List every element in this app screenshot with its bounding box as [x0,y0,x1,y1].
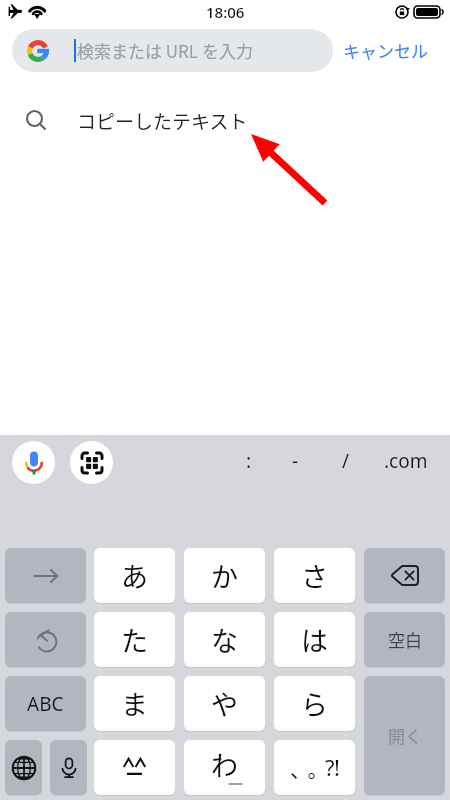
staticText: - [292,448,299,474]
button[interactable]: ABC [5,676,86,731]
staticText: : [246,448,252,474]
staticText: ま [121,684,148,723]
staticText: コピーしたテキスト [77,107,248,135]
staticText: キャンセル [343,38,428,63]
button[interactable]: / [321,441,371,481]
staticText: 空白 [388,627,422,652]
staticText: さ [301,556,328,595]
staticText: は [301,620,328,659]
button[interactable]: は [274,612,355,667]
staticText: 検索または URL を入力 [77,38,253,63]
button[interactable]: - [270,441,320,481]
staticText: / [342,448,350,474]
button[interactable]: コピーしたテキスト [0,94,450,148]
button[interactable] [94,740,175,795]
button[interactable]: Next candidate [5,548,86,603]
button[interactable]: や [184,676,265,731]
button[interactable]: わ [184,740,265,795]
button[interactable]: Change keyboard [5,740,42,795]
staticText: や [211,684,238,723]
staticText: ら [301,684,328,723]
button[interactable]: Google Lens [70,441,113,484]
button[interactable]: あ [94,548,175,603]
staticText: あ [121,556,148,595]
button[interactable]: 開く [364,676,445,795]
staticText: ?! [325,752,340,782]
button[interactable]: 空白 [364,612,445,667]
staticText: か [211,556,238,595]
button[interactable]: Backspace [364,548,445,603]
staticText: ABC [27,691,64,717]
button[interactable]: さ [274,548,355,603]
button[interactable]: : [224,441,274,481]
staticText: 、。 [290,753,325,783]
button[interactable]: 検索または URL を入力 [12,29,333,72]
button[interactable]: Voice search [12,441,55,484]
staticText: 18:06 [206,2,245,22]
staticText: 開く [388,723,422,748]
button[interactable]: Undo [5,612,86,667]
button[interactable]: .com [381,441,431,481]
button[interactable]: Dictation [50,740,87,795]
staticText: わ [211,745,238,784]
button[interactable]: キャンセル [342,29,428,72]
button[interactable]: な [184,612,265,667]
staticText: た [121,620,148,659]
button[interactable]: 、。 [274,740,355,795]
staticText: .com [384,448,428,474]
button[interactable]: ま [94,676,175,731]
staticText: な [211,620,238,659]
button[interactable]: か [184,548,265,603]
button[interactable]: た [94,612,175,667]
button[interactable]: ら [274,676,355,731]
